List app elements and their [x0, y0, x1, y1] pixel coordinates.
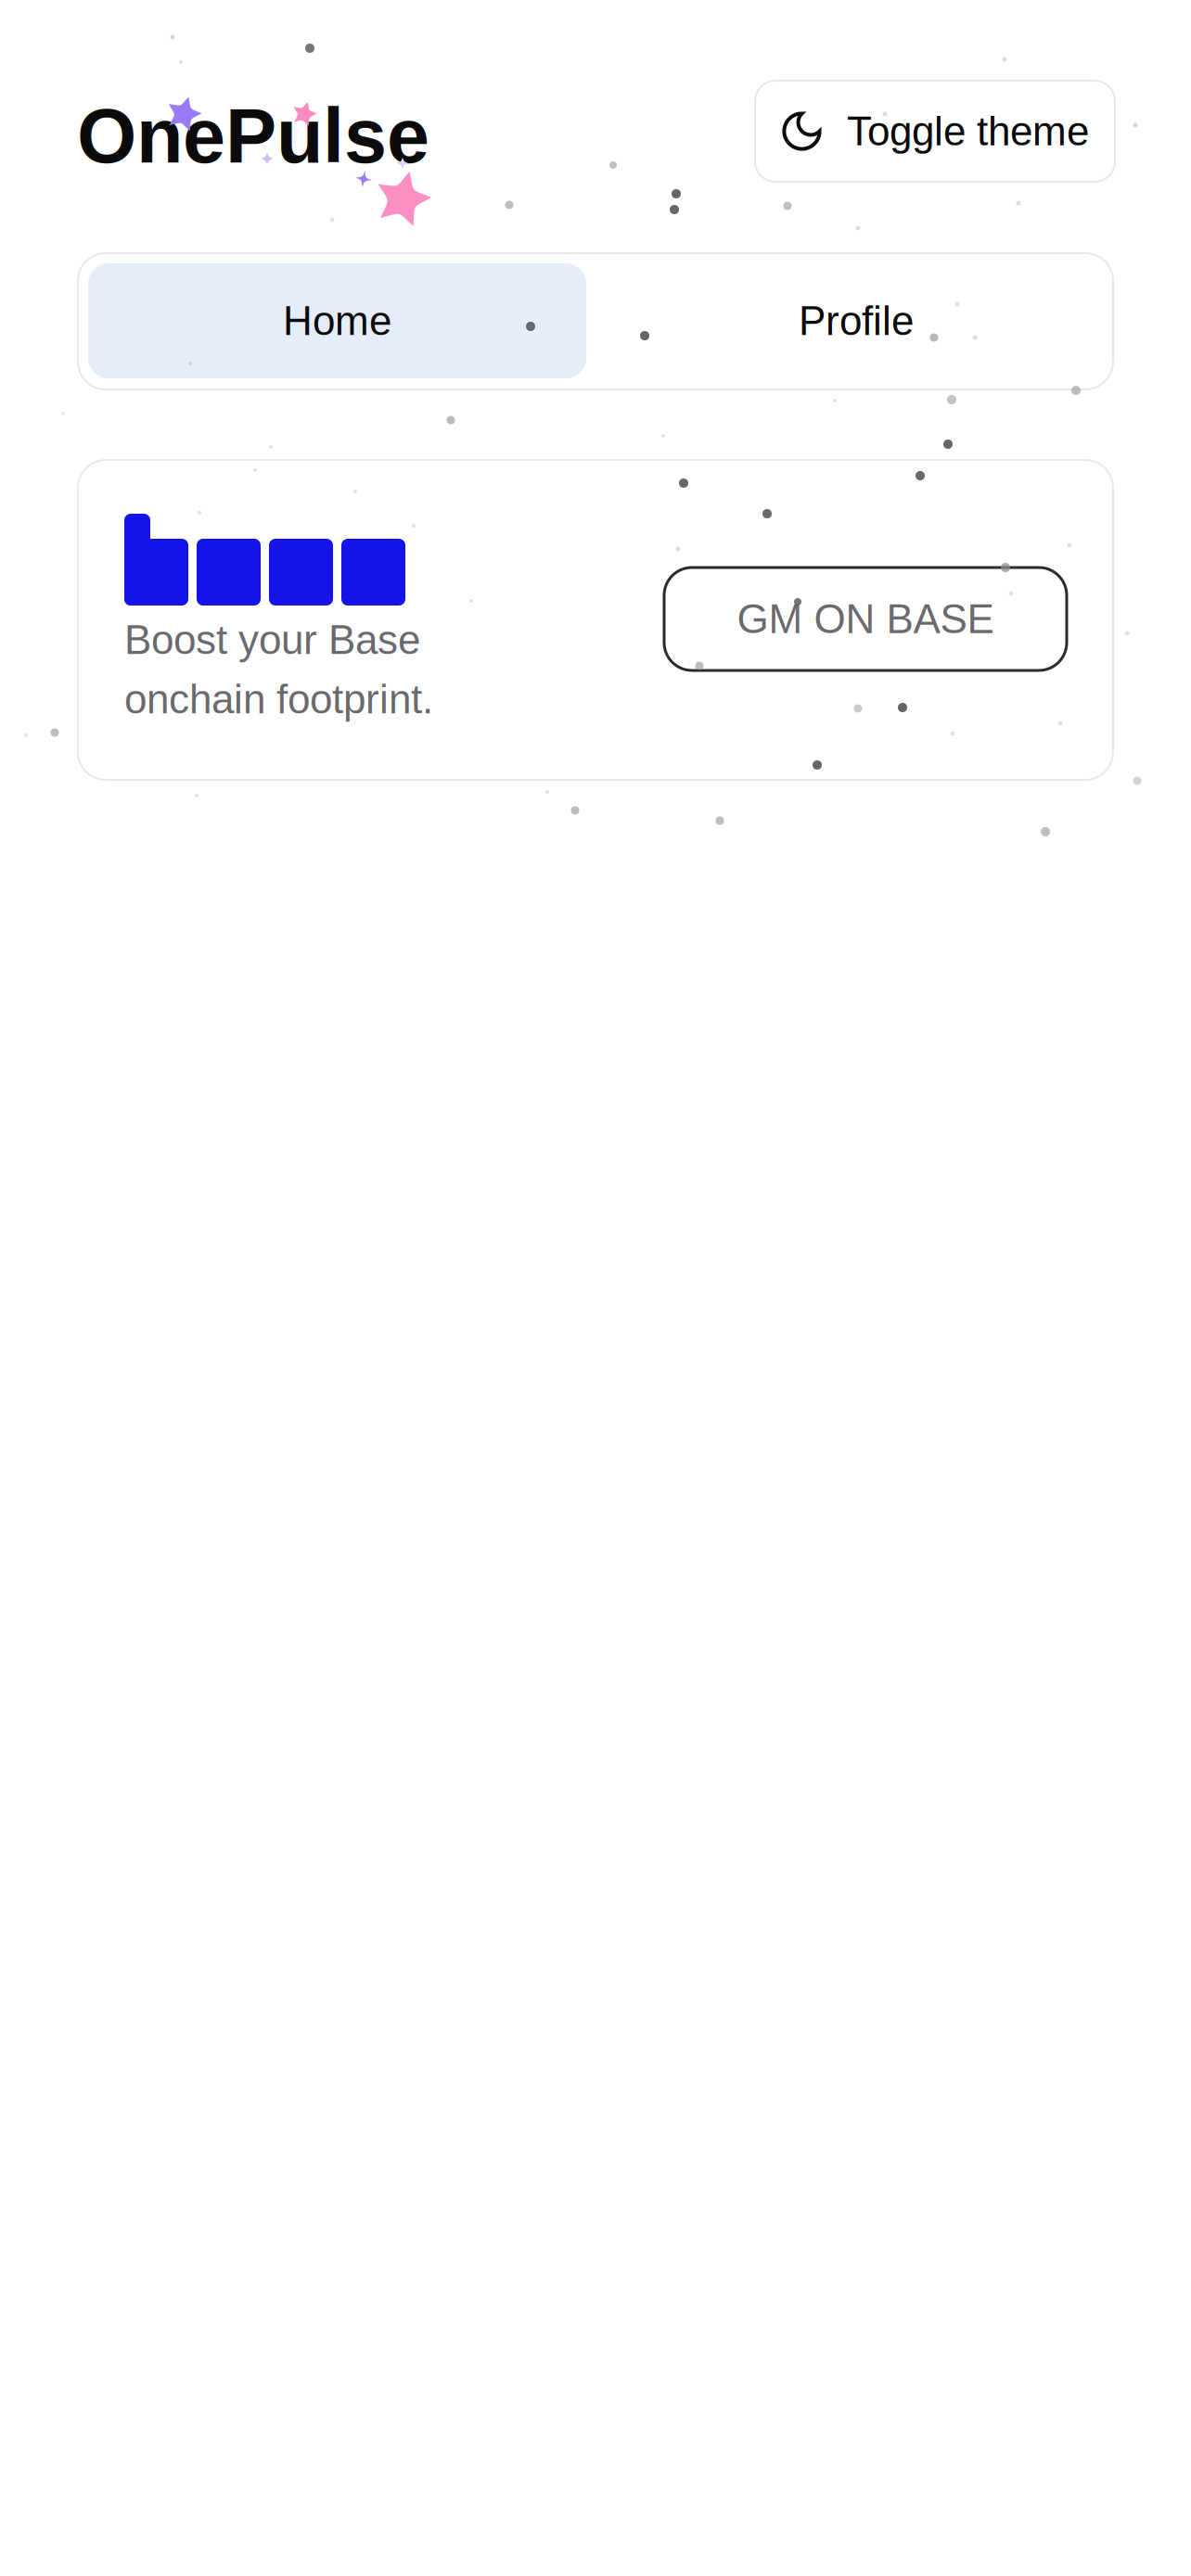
button[interactable]: GM ON BASE — [664, 567, 1067, 670]
staticText: Boost your Base — [124, 617, 420, 663]
staticText: Toggle theme — [847, 108, 1089, 154]
staticText: Home — [283, 298, 391, 344]
staticText: onchain footprint. — [124, 676, 433, 722]
button[interactable]: Toggle theme — [755, 81, 1115, 182]
button[interactable]: Home — [88, 263, 586, 378]
staticText: GM ON BASE — [737, 596, 994, 642]
staticText: OnePulse — [77, 93, 429, 179]
button[interactable]: Profile — [609, 263, 1103, 378]
staticText: Profile — [799, 298, 914, 344]
